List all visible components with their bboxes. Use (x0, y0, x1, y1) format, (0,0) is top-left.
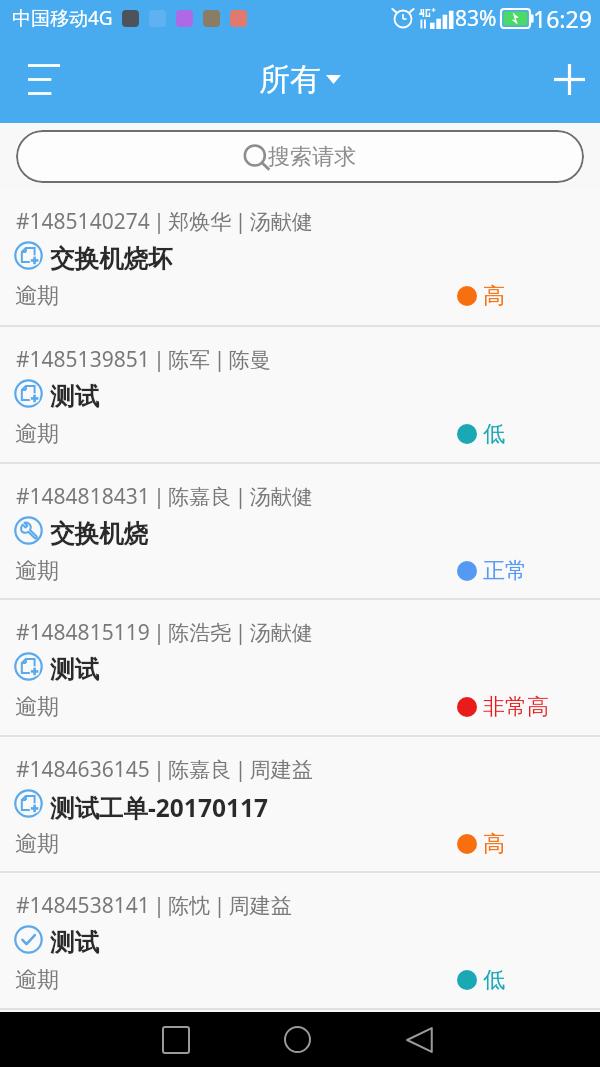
button[interactable]: 搜索请求 (16, 130, 584, 183)
button[interactable]: #1485140274 | 郑焕华 | 汤献健 (0, 189, 600, 325)
button[interactable]: 所有 (259, 60, 341, 99)
staticText: 测试工单-20170117 (50, 791, 268, 824)
staticText: 高 (483, 282, 505, 310)
staticText: 测试 (50, 654, 99, 685)
staticText: 交换机烧坏 (50, 243, 173, 274)
staticText: 逾期 (15, 966, 59, 994)
staticText: #1485140274 | 郑焕华 | 汤献健 (16, 207, 313, 236)
staticText: #1485139851 | 陈军 | 陈曼 (16, 345, 271, 374)
button[interactable]: Add (539, 36, 600, 123)
button[interactable]: Home (257, 1012, 337, 1067)
staticText: 正常 (483, 557, 527, 585)
staticText: 低 (483, 420, 505, 448)
staticText: 逾期 (15, 282, 59, 310)
button[interactable]: #1484538141 | 陈忱 | 周建益 (0, 873, 600, 1008)
button[interactable]: #1484636145 | 陈嘉良 | 周建益 (0, 737, 600, 871)
staticText: 中国移动4G (12, 5, 113, 31)
button[interactable]: Recents (136, 1012, 216, 1067)
button[interactable]: #1484815119 | 陈浩尧 | 汤献健 (0, 600, 600, 735)
staticText: 交换机烧 (50, 518, 148, 549)
staticText: #1484818431 | 陈嘉良 | 汤献健 (16, 482, 313, 511)
staticText: 所有 (259, 60, 321, 99)
staticText: 高 (483, 830, 505, 858)
button[interactable]: #1484818431 | 陈嘉良 | 汤献健 (0, 464, 600, 598)
button[interactable]: #1485139851 | 陈军 | 陈曼 (0, 327, 600, 462)
staticText: #1484636145 | 陈嘉良 | 周建益 (16, 755, 313, 784)
staticText: 非常高 (483, 693, 549, 721)
button[interactable]: Back (380, 1012, 460, 1067)
staticText: 测试 (50, 927, 99, 958)
staticText: 测试 (50, 381, 99, 412)
staticText: 16:29 (533, 3, 592, 34)
staticText: 逾期 (15, 557, 59, 585)
staticText: 搜索请求 (268, 143, 356, 171)
staticText: 逾期 (15, 420, 59, 448)
button[interactable]: Menu (0, 36, 87, 123)
staticText: 逾期 (15, 693, 59, 721)
staticText: 83% (455, 4, 497, 33)
staticText: #1484815119 | 陈浩尧 | 汤献健 (16, 618, 313, 647)
staticText: 逾期 (15, 830, 59, 858)
staticText: #1484538141 | 陈忱 | 周建益 (16, 891, 292, 920)
staticText: 低 (483, 966, 505, 994)
